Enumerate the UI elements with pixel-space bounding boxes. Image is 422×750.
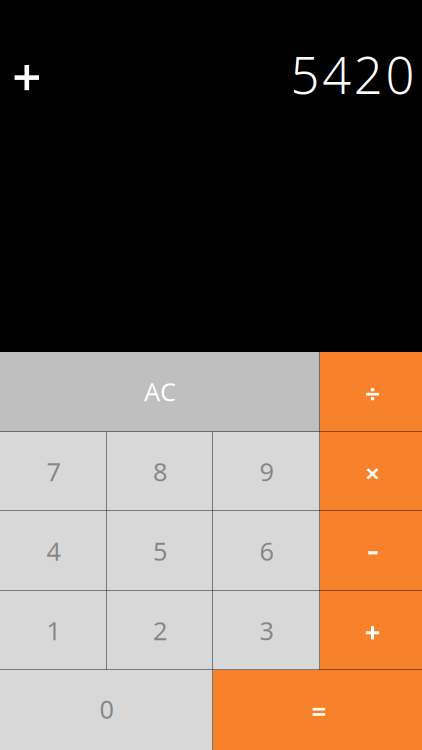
staticText: 1: [46, 614, 60, 647]
staticText: 4: [322, 41, 351, 108]
button[interactable]: 9: [213, 432, 320, 511]
staticText: 0: [99, 692, 113, 726]
staticText: AC: [144, 375, 176, 408]
button[interactable]: 1: [0, 591, 107, 670]
staticText: 4: [46, 534, 60, 568]
button[interactable]: 4: [0, 511, 107, 591]
button[interactable]: 0: [0, 670, 213, 750]
staticText: 5: [153, 534, 167, 568]
button[interactable]: 5: [107, 511, 213, 591]
button[interactable]: 3: [213, 591, 320, 670]
button[interactable]: 7: [0, 432, 107, 511]
staticText: 7: [46, 455, 60, 488]
button[interactable]: 8: [107, 432, 213, 511]
button[interactable]: Multiply: [320, 432, 422, 511]
staticText: 5: [290, 41, 319, 108]
button[interactable]: Divide: [320, 352, 422, 432]
staticText: 3: [259, 614, 273, 647]
staticText: 9: [259, 455, 273, 488]
staticText: 0: [385, 41, 414, 108]
button[interactable]: Minus: [320, 511, 422, 591]
staticText: 2: [153, 614, 167, 647]
staticText: 6: [259, 534, 273, 568]
button[interactable]: Equals: [213, 670, 422, 750]
staticText: 2: [354, 41, 383, 108]
button[interactable]: 6: [213, 511, 320, 591]
button[interactable]: All clear: [0, 352, 320, 432]
button[interactable]: Plus: [320, 591, 422, 670]
button[interactable]: 2: [107, 591, 213, 670]
staticText: 8: [153, 455, 167, 488]
